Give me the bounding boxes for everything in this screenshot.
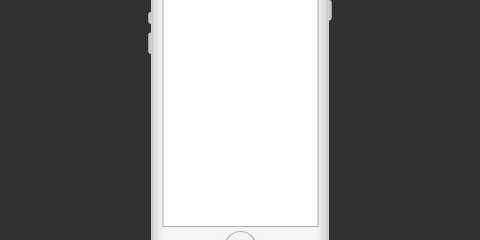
other: Home button	[0, 0, 480, 240]
